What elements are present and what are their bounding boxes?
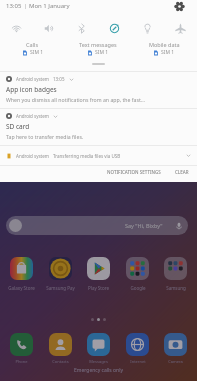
staticText: Phone xyxy=(15,359,28,364)
staticText: App icon badges xyxy=(6,85,57,94)
button[interactable]: Sound xyxy=(32,17,65,39)
staticText: Tap here to transfer media files. xyxy=(6,133,84,140)
staticText: Mon 1 January xyxy=(29,2,70,10)
staticText: When you dismiss all notifications from … xyxy=(6,96,146,103)
staticText: Transferring media files via USB xyxy=(53,153,121,159)
button[interactable]: NOTIFICATION SETTINGS xyxy=(103,167,165,177)
staticText: Camera xyxy=(168,359,183,364)
staticText: Android system xyxy=(16,76,49,82)
button[interactable]: Samsung Pay xyxy=(44,257,77,291)
staticText: Samsung xyxy=(166,285,186,291)
staticText: NOTIFICATION SETTINGS xyxy=(107,169,161,175)
staticText: Google xyxy=(130,285,146,291)
staticText: Play Store xyxy=(88,285,109,291)
staticText: SD card xyxy=(6,122,30,131)
button[interactable]: Google xyxy=(121,257,154,291)
staticText: 13:05 xyxy=(6,2,22,10)
button[interactable]: Play Store xyxy=(82,257,115,291)
button[interactable]: Internet xyxy=(121,333,154,364)
staticText: Contacts xyxy=(52,359,69,364)
button[interactable]: Flight mode xyxy=(164,17,197,39)
staticText: Mobile data xyxy=(149,41,180,48)
button[interactable]: Galaxy Store xyxy=(5,257,38,291)
staticText: Samsung Pay xyxy=(46,285,75,291)
staticText: Android system xyxy=(16,113,49,119)
staticText: 13:05 xyxy=(53,76,65,82)
button[interactable]: Android system xyxy=(0,109,197,145)
button[interactable]: Settings xyxy=(172,0,186,13)
button[interactable]: Say "Hi, Bixby" xyxy=(6,216,188,235)
staticText: Emergency calls only xyxy=(0,367,197,374)
staticText: Say "Hi, Bixby" xyxy=(125,222,163,229)
button[interactable]: Wi-Fi xyxy=(0,17,32,39)
button[interactable]: Bluetooth xyxy=(65,17,98,39)
button[interactable]: Text messages xyxy=(65,39,131,57)
button[interactable]: Camera xyxy=(159,333,192,364)
button[interactable]: Android system xyxy=(0,72,197,108)
staticText: Messages xyxy=(89,359,108,364)
staticText: Android system xyxy=(16,153,49,159)
button[interactable]: Calls xyxy=(0,39,65,57)
button[interactable]: Phone xyxy=(5,333,38,364)
staticText: CLEAR xyxy=(175,169,189,175)
staticText: SIM 1 xyxy=(30,49,44,56)
button[interactable]: Flashlight xyxy=(131,17,164,39)
button[interactable]: Samsung xyxy=(159,257,192,291)
staticText: SIM 1 xyxy=(161,49,175,56)
staticText: Calls xyxy=(26,41,39,48)
button[interactable]: CLEAR xyxy=(171,167,193,177)
button[interactable]: Android system xyxy=(0,146,197,165)
button[interactable]: Mobile data xyxy=(131,39,197,57)
staticText: SIM 1 xyxy=(95,49,109,56)
button[interactable]: Messages xyxy=(82,333,115,364)
button[interactable]: Contacts xyxy=(44,333,77,364)
button[interactable]: Location xyxy=(98,17,131,39)
staticText: Internet xyxy=(130,359,146,364)
staticText: Galaxy Store xyxy=(8,285,35,291)
staticText: Text messages xyxy=(79,41,117,48)
